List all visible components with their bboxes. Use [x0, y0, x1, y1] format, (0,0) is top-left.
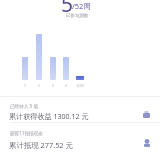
- staticText: 4: [58, 83, 74, 88]
- staticText: 2: [31, 83, 47, 88]
- staticText: 累计抵现 277.52 元: [9, 140, 73, 150]
- staticText: 3: [45, 83, 61, 88]
- staticText: 5: [61, 0, 74, 19]
- button[interactable]: 获得11张抵现金: [0, 124, 160, 152]
- other: 抵现: [143, 139, 151, 147]
- button[interactable]: 已经转入 5 笔: [0, 97, 160, 122]
- staticText: 已经转入 5 笔: [10, 103, 38, 109]
- staticText: 1: [17, 83, 33, 88]
- other: 收益: [143, 111, 150, 118]
- staticText: 本期: [72, 83, 88, 88]
- staticText: 累计获得收益 1300.12 元: [9, 111, 89, 121]
- staticText: /52周: [72, 1, 91, 11]
- staticText: 已参与期数: [62, 13, 92, 19]
- staticText: 获得11张抵现金: [10, 130, 43, 136]
